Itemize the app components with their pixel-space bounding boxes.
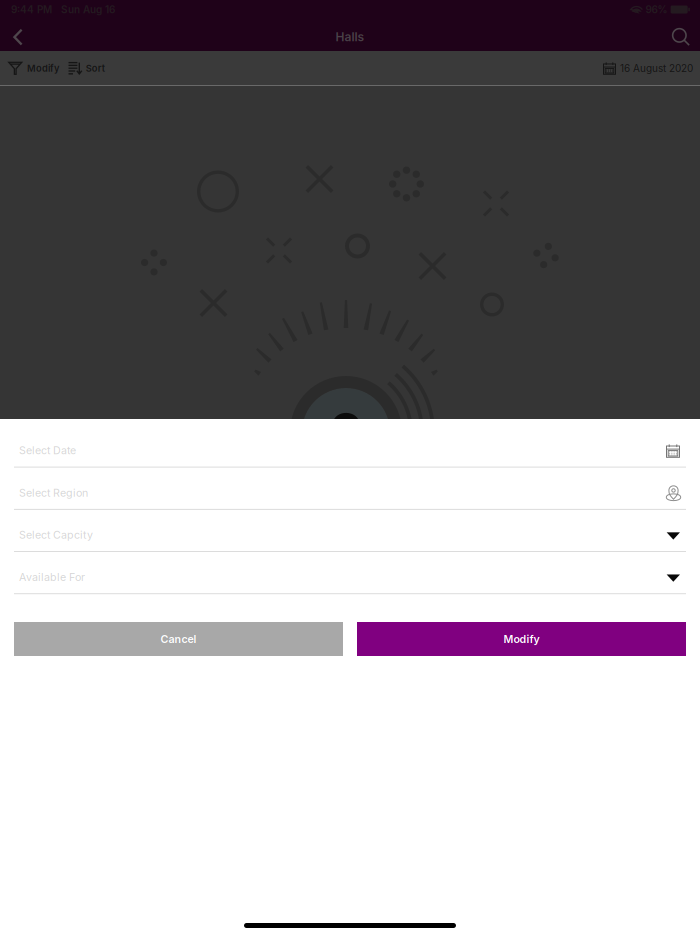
button[interactable]: 16 August 2020 xyxy=(602,62,694,75)
button[interactable]: Back xyxy=(3,21,33,52)
button[interactable]: Modify xyxy=(357,622,686,656)
button[interactable]: Select Capcity xyxy=(0,510,700,552)
button[interactable]: Select Region xyxy=(0,468,700,510)
staticText: Available For xyxy=(19,571,85,583)
button[interactable]: Select Date xyxy=(0,419,700,468)
button[interactable]: Modify xyxy=(7,61,60,75)
staticText: 96% xyxy=(645,3,667,16)
staticText: Select Region xyxy=(19,486,88,499)
button[interactable]: Available For xyxy=(0,552,700,594)
staticText: 9:44 PM Sun Aug 16 xyxy=(11,3,115,16)
button[interactable]: Sort xyxy=(60,61,106,75)
button[interactable]: Search xyxy=(666,21,696,52)
staticText: Halls xyxy=(335,30,364,44)
staticText: Sort xyxy=(86,63,105,74)
staticText: Modify xyxy=(503,632,539,645)
staticText: Select Capcity xyxy=(19,528,93,541)
staticText: Modify xyxy=(27,63,59,74)
staticText: 16 August 2020 xyxy=(620,62,693,74)
staticText: Cancel xyxy=(160,632,196,645)
button[interactable]: Cancel xyxy=(14,622,343,656)
staticText: Select Date xyxy=(19,444,76,457)
